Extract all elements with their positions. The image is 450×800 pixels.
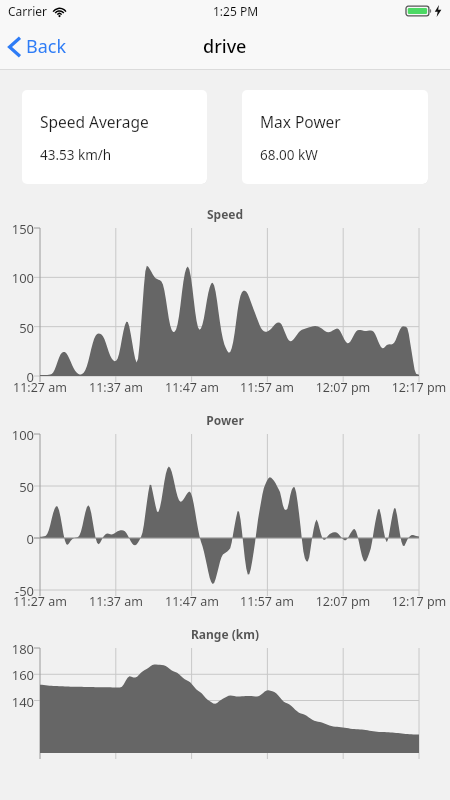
staticText: 11:47 am xyxy=(157,593,227,610)
staticText: 43.53 km/h xyxy=(40,146,112,164)
staticText: 160 xyxy=(0,666,34,684)
staticText: 180 xyxy=(0,640,34,658)
staticText: Back xyxy=(26,34,67,59)
staticText: -50 xyxy=(0,582,34,600)
staticText: Range (km) xyxy=(0,626,450,642)
staticText: 11:47 am xyxy=(157,379,227,396)
staticText: 50 xyxy=(0,478,34,496)
staticText: 11:27 am xyxy=(5,379,75,396)
staticText: 140 xyxy=(0,693,34,711)
staticText: Carrier xyxy=(8,3,48,19)
button[interactable]: Max Power xyxy=(242,90,428,184)
button[interactable]: Back xyxy=(0,28,77,65)
staticText: 12:17 pm xyxy=(384,379,450,396)
staticText: Speed Average xyxy=(40,111,149,132)
staticText: Power xyxy=(0,412,450,428)
staticText: Speed xyxy=(0,206,450,222)
staticText: Max Power xyxy=(260,111,341,132)
staticText: 12:07 pm xyxy=(308,379,378,396)
staticText: 11:57 am xyxy=(232,379,302,396)
staticText: 11:57 am xyxy=(232,593,302,610)
staticText: 100 xyxy=(0,426,34,444)
staticText: 50 xyxy=(0,319,34,337)
staticText: 150 xyxy=(0,220,34,238)
staticText: 100 xyxy=(0,269,34,287)
staticText: drive xyxy=(203,34,247,59)
staticText: 0 xyxy=(0,368,34,386)
staticText: 0 xyxy=(0,530,34,548)
staticText: 68.00 kW xyxy=(260,146,318,164)
staticText: 12:07 pm xyxy=(308,593,378,610)
staticText: 1:25 PM xyxy=(213,3,259,19)
staticText: 12:17 pm xyxy=(384,593,450,610)
button[interactable]: Speed Average xyxy=(22,90,207,184)
staticText: 11:27 am xyxy=(5,593,75,610)
staticText: 11:37 am xyxy=(81,593,151,610)
staticText: 11:37 am xyxy=(81,379,151,396)
